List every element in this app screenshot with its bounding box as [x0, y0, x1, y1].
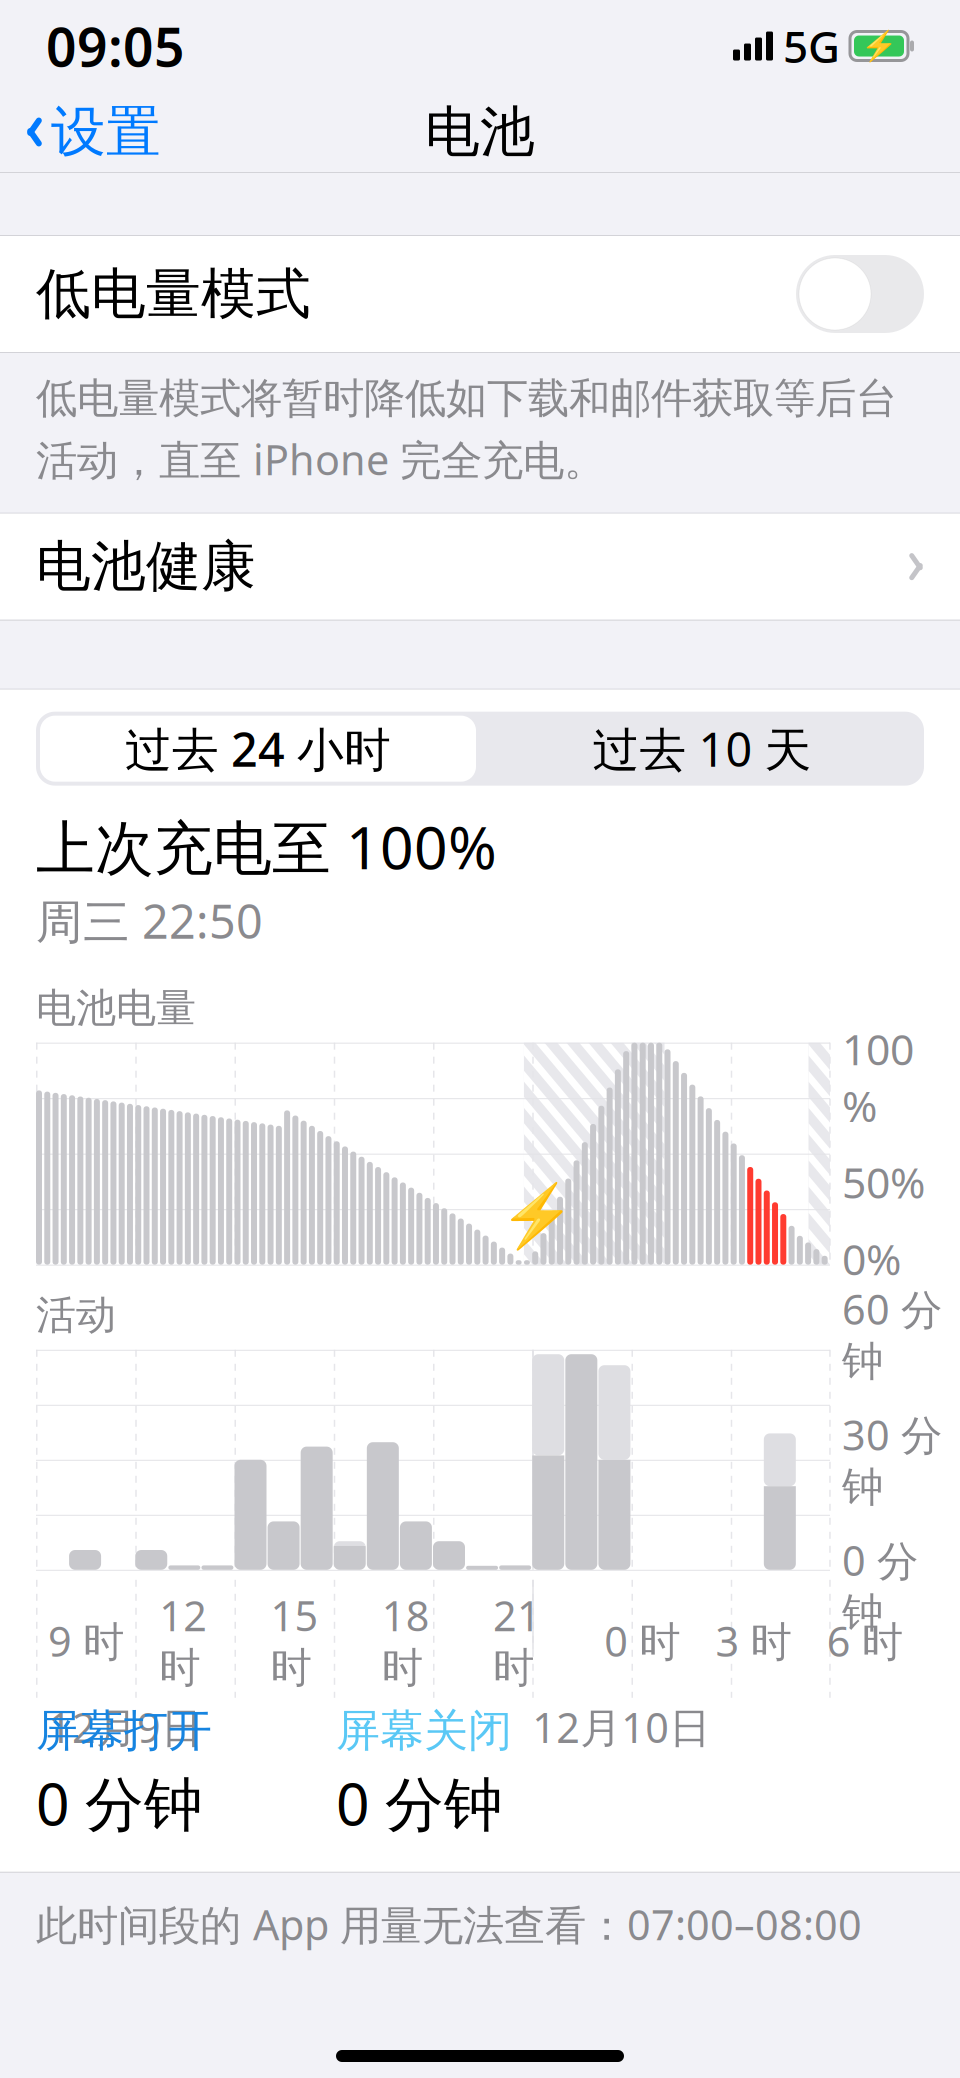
staticText: 3 时: [715, 1613, 791, 1668]
staticText: 低电量模式将暂时降低如下载和邮件获取等后台活动，直至 iPhone 完全充电。: [36, 373, 897, 487]
staticText: ⚡: [860, 29, 897, 63]
staticText: 15 时: [270, 1588, 318, 1693]
button[interactable]: 电池健康: [0, 514, 960, 620]
staticText: 0 分钟: [336, 1764, 503, 1842]
button[interactable]: 屏幕关闭: [336, 1704, 636, 1842]
staticText: 低电量模式: [36, 260, 311, 327]
staticText: 电池健康: [36, 533, 256, 600]
staticText: 12月10日: [532, 1699, 710, 1754]
staticText: 18 时: [382, 1588, 430, 1693]
staticText: 0 时: [604, 1613, 680, 1668]
staticText: 5G: [783, 17, 840, 75]
staticText: 0 分钟: [842, 1533, 918, 1638]
button[interactable]: 过去 10 天: [480, 712, 924, 786]
staticText: 屏幕打开: [36, 1704, 212, 1758]
staticText: 12 时: [159, 1588, 207, 1693]
staticText: 9 时: [48, 1613, 124, 1668]
staticText: 电池电量: [36, 983, 196, 1033]
staticText: 上次充电至 100%: [36, 808, 497, 886]
staticText: 09:05: [46, 11, 185, 81]
staticText: 设置: [51, 98, 161, 165]
staticText: ⚡: [499, 1181, 575, 1251]
staticText: 此时间段的 App 用量无法查看：07:00–08:00: [36, 1897, 862, 1952]
button[interactable]: 低电量模式: [0, 236, 960, 352]
staticText: 100%: [842, 1020, 914, 1134]
staticText: 30 分钟: [842, 1407, 942, 1513]
staticText: 60 分钟: [842, 1281, 942, 1387]
staticText: 50%: [842, 1154, 925, 1210]
staticText: 过去 24 小时: [125, 718, 391, 780]
staticText: 周三 22:50: [36, 890, 263, 952]
staticText: 活动: [36, 1291, 116, 1340]
staticText: 屏幕关闭: [336, 1704, 512, 1758]
staticText: 电池: [425, 98, 535, 165]
staticText: 21 时: [493, 1588, 541, 1693]
staticText: 过去 10 天: [592, 718, 811, 780]
staticText: 12月9日: [48, 1699, 202, 1754]
button[interactable]: 屏幕打开: [36, 1704, 336, 1842]
button[interactable]: 过去 24 小时: [36, 712, 480, 786]
staticText: 0%: [842, 1230, 901, 1287]
button[interactable]: 设置: [0, 84, 161, 179]
staticText: 0 分钟: [36, 1764, 203, 1842]
staticText: 6 时: [827, 1613, 903, 1668]
